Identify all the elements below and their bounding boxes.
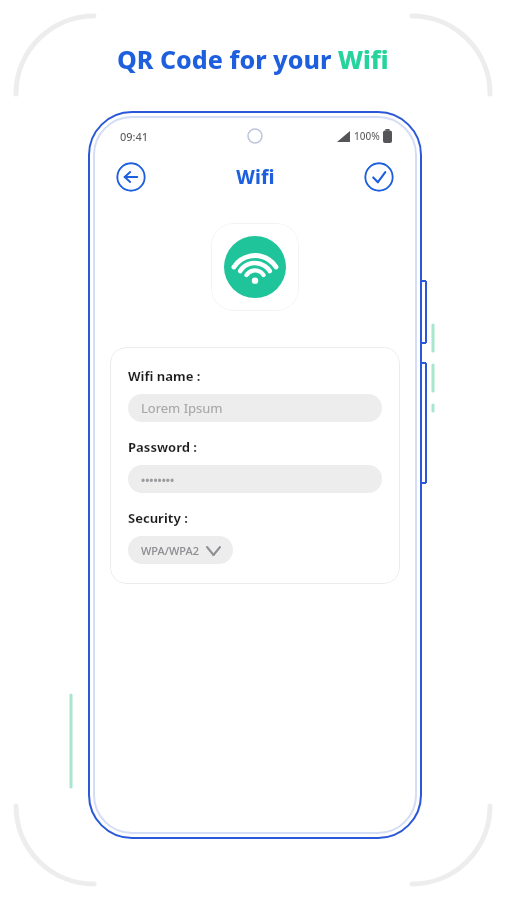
- staticText: WPA/WPA2: [141, 543, 199, 558]
- button[interactable]: Confirm: [364, 162, 394, 192]
- staticText: Wifi: [236, 164, 275, 190]
- staticText: Security :: [128, 509, 188, 527]
- staticText: Wifi name :: [128, 367, 201, 385]
- button[interactable]: WPA/WPA2: [128, 536, 233, 564]
- staticText: 100%: [354, 129, 380, 143]
- staticText: Lorem Ipsum: [141, 399, 223, 417]
- staticText: 09:41: [120, 129, 149, 144]
- button[interactable]: Back: [116, 162, 146, 192]
- staticText: ••••••••: [141, 472, 175, 487]
- button[interactable]: ••••••••: [128, 465, 382, 493]
- staticText: Password :: [128, 438, 197, 456]
- button[interactable]: Lorem Ipsum: [128, 394, 382, 422]
- staticText: QR Code for your Wifi: [117, 42, 389, 76]
- button[interactable]: Wifi: [211, 223, 299, 311]
